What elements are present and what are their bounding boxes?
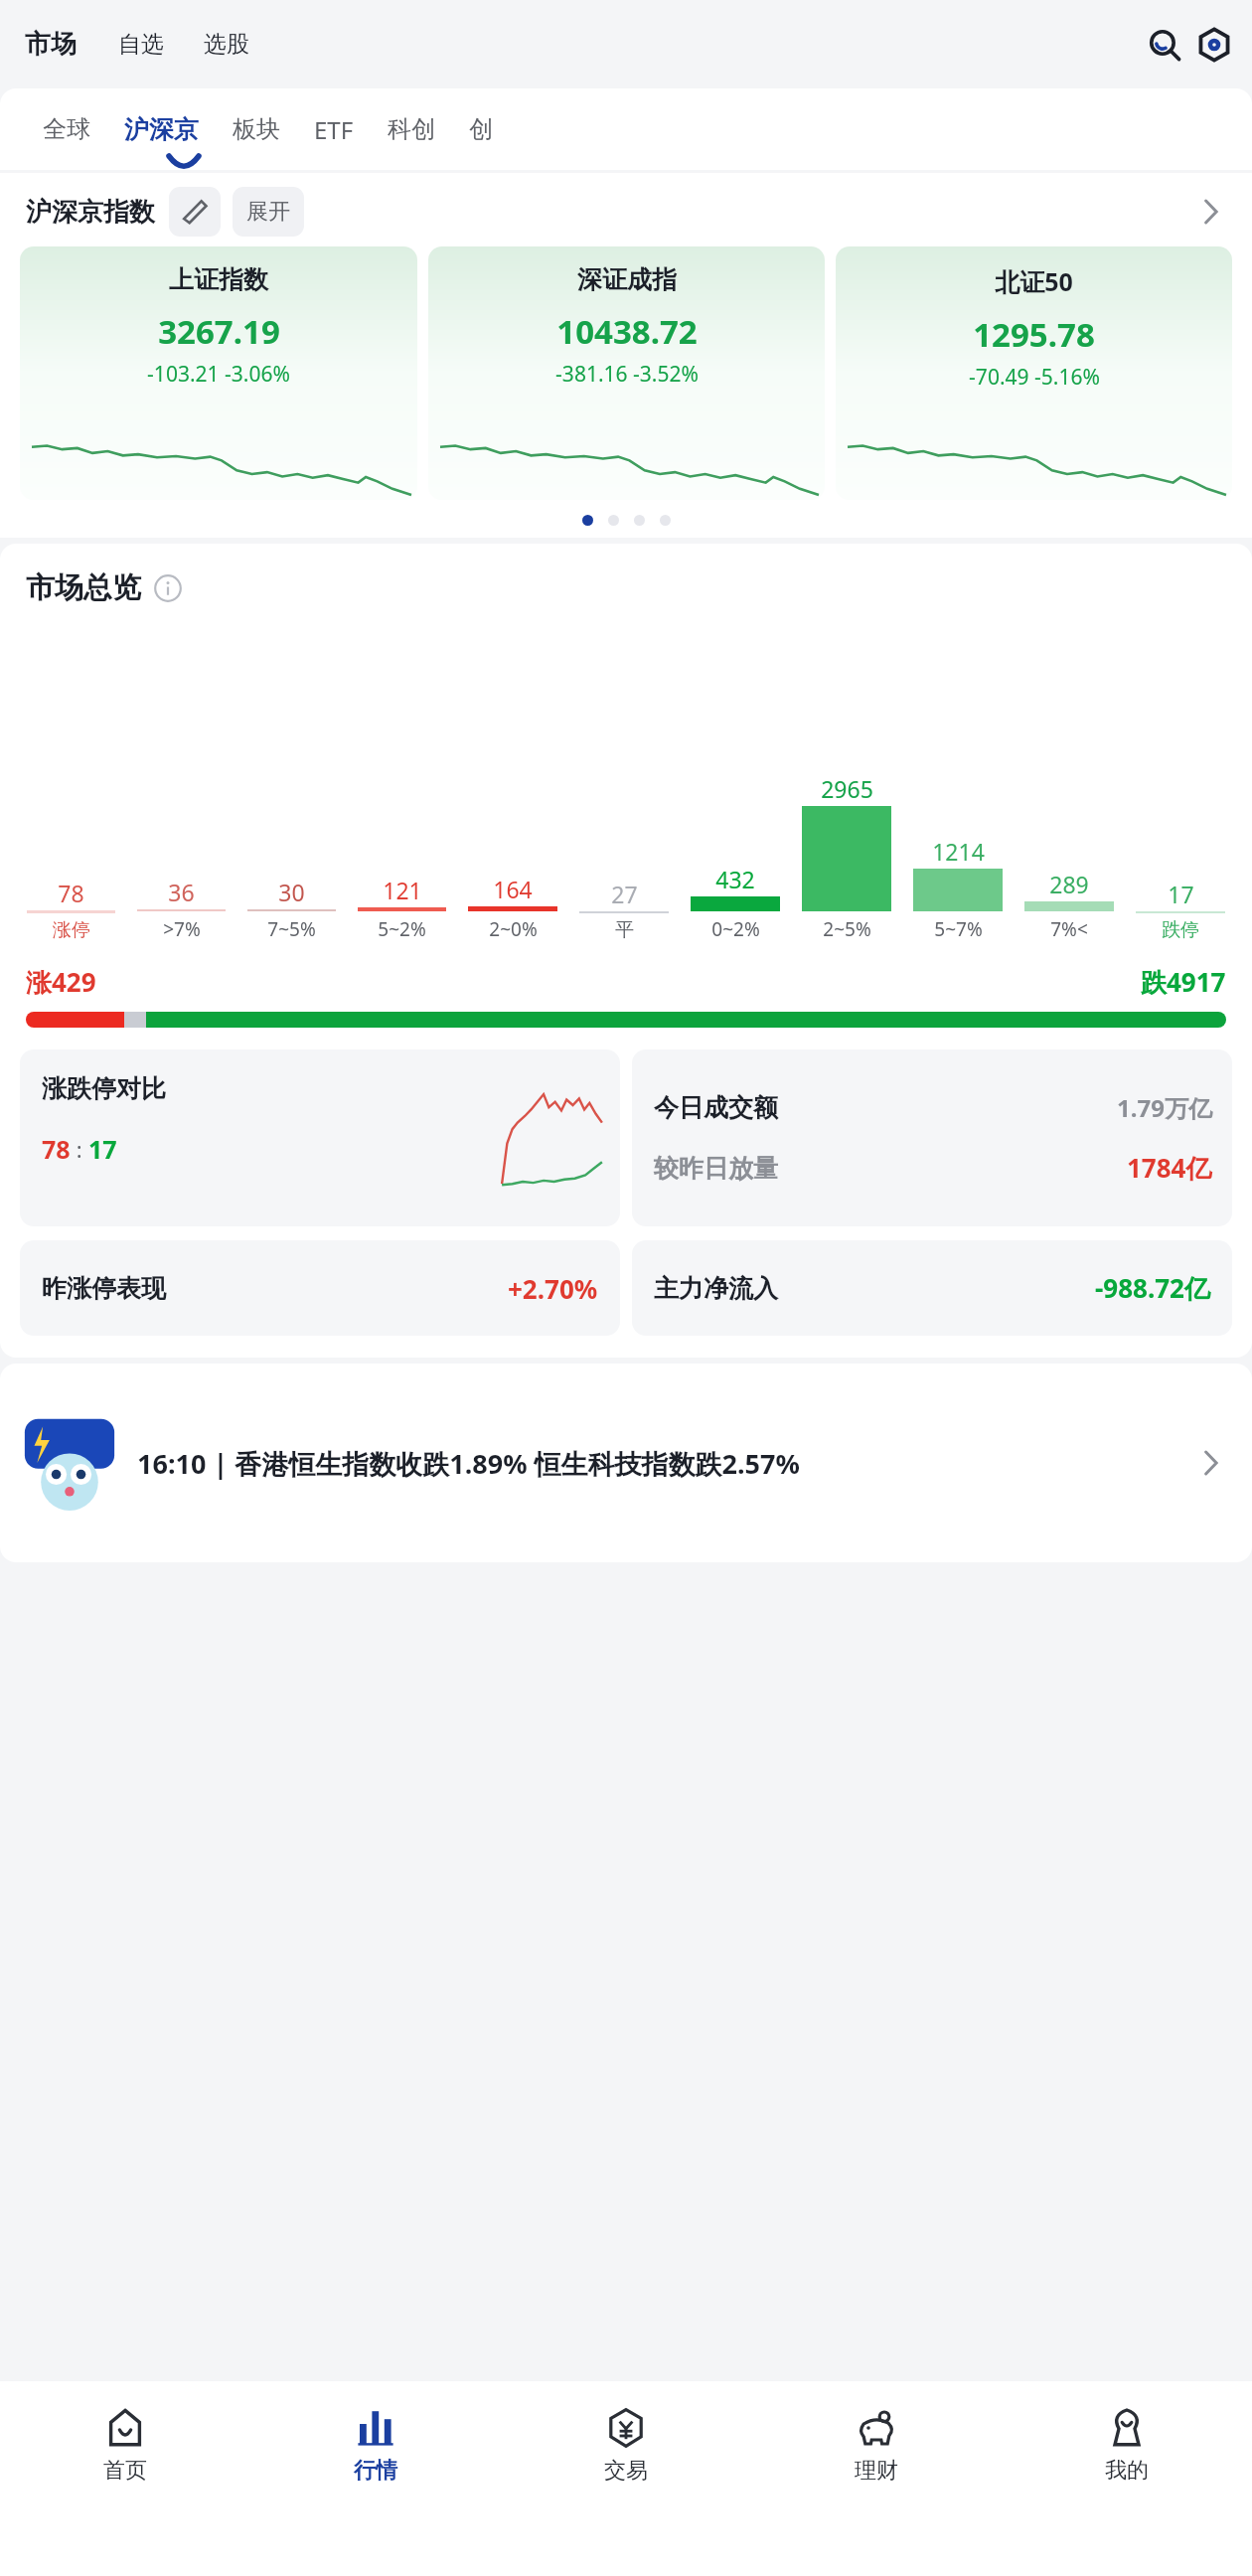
staticText: 理财 xyxy=(855,2457,898,2485)
button[interactable]: 首页 xyxy=(0,2381,250,2508)
button[interactable]: Settings xyxy=(1192,23,1236,67)
staticText: 27 xyxy=(611,879,638,909)
staticText: 78 xyxy=(58,878,84,908)
staticText: 交易 xyxy=(604,2457,648,2485)
staticText: 5~7% xyxy=(934,916,983,942)
button[interactable]: 行情 xyxy=(250,2381,501,2508)
staticText: 较昨日放量 xyxy=(654,1153,778,1184)
staticText: 16:10 | 香港恒生指数收跌1.89% 恒生科技指数跌2.57% xyxy=(137,1445,800,1482)
staticText: +2.70% xyxy=(508,1271,598,1306)
staticText: 1295.78 xyxy=(973,312,1095,357)
staticText: 432 xyxy=(715,864,755,894)
staticText: 121 xyxy=(383,875,422,905)
staticText: 1214 xyxy=(932,836,985,867)
button[interactable]: 主力净流入 xyxy=(632,1240,1232,1336)
button[interactable]: 16:10 | 香港恒生指数收跌1.89% 恒生科技指数跌2.57% xyxy=(0,1364,1252,1562)
button[interactable]: Search xyxy=(1143,23,1186,67)
button[interactable]: 涨跌停对比 xyxy=(20,1049,620,1226)
staticText: 昨涨停表现 xyxy=(42,1273,166,1304)
button[interactable]: 上证指数 xyxy=(20,246,417,500)
button[interactable]: 展开 xyxy=(233,187,304,237)
staticText: 36 xyxy=(168,877,195,907)
staticText: >7% xyxy=(163,916,201,942)
button[interactable]: 交易 xyxy=(501,2381,751,2508)
button[interactable]: 今日成交额 xyxy=(632,1049,1232,1226)
staticText: 今日成交额 xyxy=(654,1092,778,1123)
staticText: 全球 xyxy=(43,114,90,144)
staticText: 行情 xyxy=(354,2457,397,2485)
staticText: 1.79万亿 xyxy=(1117,1091,1212,1124)
staticText: 10438.72 xyxy=(556,309,698,354)
staticText: 跌停 xyxy=(1162,918,1199,942)
staticText: 289 xyxy=(1049,869,1089,899)
staticText: 市场 xyxy=(25,28,77,61)
staticText: 上证指数 xyxy=(169,264,268,295)
button[interactable]: 全球 xyxy=(26,106,107,152)
staticText: 沪深京指数 xyxy=(26,196,155,229)
staticText: 主力净流入 xyxy=(654,1273,778,1304)
staticText: -103.21 -3.06% xyxy=(147,360,290,389)
button[interactable]: 科创 xyxy=(371,106,452,152)
staticText: 7%< xyxy=(1050,916,1088,942)
staticText: 沪深京 xyxy=(124,114,199,145)
button[interactable]: 理财 xyxy=(751,2381,1002,2508)
staticText: ETF xyxy=(314,113,354,146)
button[interactable]: 深证成指 xyxy=(428,246,825,500)
button[interactable]: 市场 xyxy=(21,28,80,61)
staticText: -988.72亿 xyxy=(1095,1270,1210,1306)
staticText: 17 xyxy=(88,1132,117,1166)
staticText: 平 xyxy=(615,918,634,942)
staticText: 跌4917 xyxy=(1141,964,1226,1000)
button[interactable]: 沪深京 xyxy=(107,106,216,153)
staticText: 2965 xyxy=(821,773,873,804)
button[interactable]: 自选 xyxy=(114,30,168,59)
button[interactable]: 我的 xyxy=(1002,2381,1252,2508)
button[interactable]: ETF xyxy=(297,105,371,154)
staticText: 北证50 xyxy=(995,264,1073,298)
staticText: 5~2% xyxy=(378,916,426,942)
staticText: 我的 xyxy=(1105,2457,1149,2485)
staticText: 自选 xyxy=(118,30,164,59)
staticText: 2~0% xyxy=(489,916,538,942)
staticText: 78 xyxy=(42,1132,71,1166)
staticText: 深证成指 xyxy=(577,264,677,295)
staticText: : xyxy=(71,1134,88,1164)
staticText: -70.49 -5.16% xyxy=(969,363,1100,392)
staticText: 2~5% xyxy=(823,916,871,942)
staticText: 科创 xyxy=(388,114,435,144)
staticText: -381.16 -3.52% xyxy=(555,360,699,389)
button[interactable]: 北证50 xyxy=(836,246,1232,500)
other: Open news xyxy=(1190,1443,1230,1483)
staticText: 涨跌停对比 xyxy=(42,1073,166,1104)
staticText: 0~2% xyxy=(711,916,760,942)
staticText: 涨停 xyxy=(53,918,90,942)
staticText: 164 xyxy=(493,874,533,904)
staticText: 板块 xyxy=(233,114,280,144)
staticText: 首页 xyxy=(103,2457,147,2485)
staticText: 市场总览 xyxy=(26,569,141,606)
staticText: 7~5% xyxy=(267,916,316,942)
button[interactable]: 选股 xyxy=(200,30,253,59)
staticText: 选股 xyxy=(204,30,249,59)
button[interactable]: 板块 xyxy=(216,106,297,152)
staticText: 涨429 xyxy=(26,964,96,1000)
staticText: 展开 xyxy=(246,198,290,226)
staticText: 3267.19 xyxy=(158,309,280,354)
staticText: 30 xyxy=(278,877,305,907)
staticText: 1784亿 xyxy=(1127,1150,1212,1186)
button[interactable]: 昨涨停表现 xyxy=(20,1240,620,1336)
button[interactable]: More indices xyxy=(1188,190,1232,234)
button[interactable]: 创 xyxy=(452,106,510,152)
button[interactable]: Edit xyxy=(169,187,221,237)
staticText: 创 xyxy=(469,114,493,144)
staticText: 17 xyxy=(1168,879,1194,909)
